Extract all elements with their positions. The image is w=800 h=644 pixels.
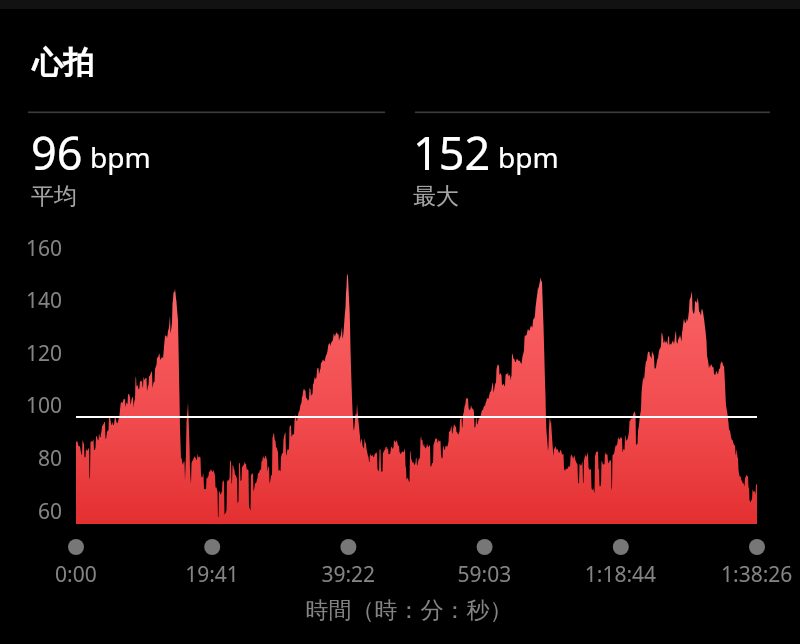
button[interactable]: 心拍グラフ [28, 232, 772, 592]
staticText: bpm [90, 138, 151, 176]
staticText: 心拍 [32, 43, 94, 82]
button[interactable]: 心拍 [32, 43, 94, 82]
button[interactable]: 152 [410, 118, 765, 214]
staticText: bpm [498, 138, 559, 176]
staticText: 152 [413, 122, 491, 183]
button[interactable]: 96 [28, 118, 383, 214]
staticText: 96 [31, 122, 83, 183]
staticText: 平均 [31, 182, 77, 211]
staticText: 最大 [413, 182, 459, 211]
